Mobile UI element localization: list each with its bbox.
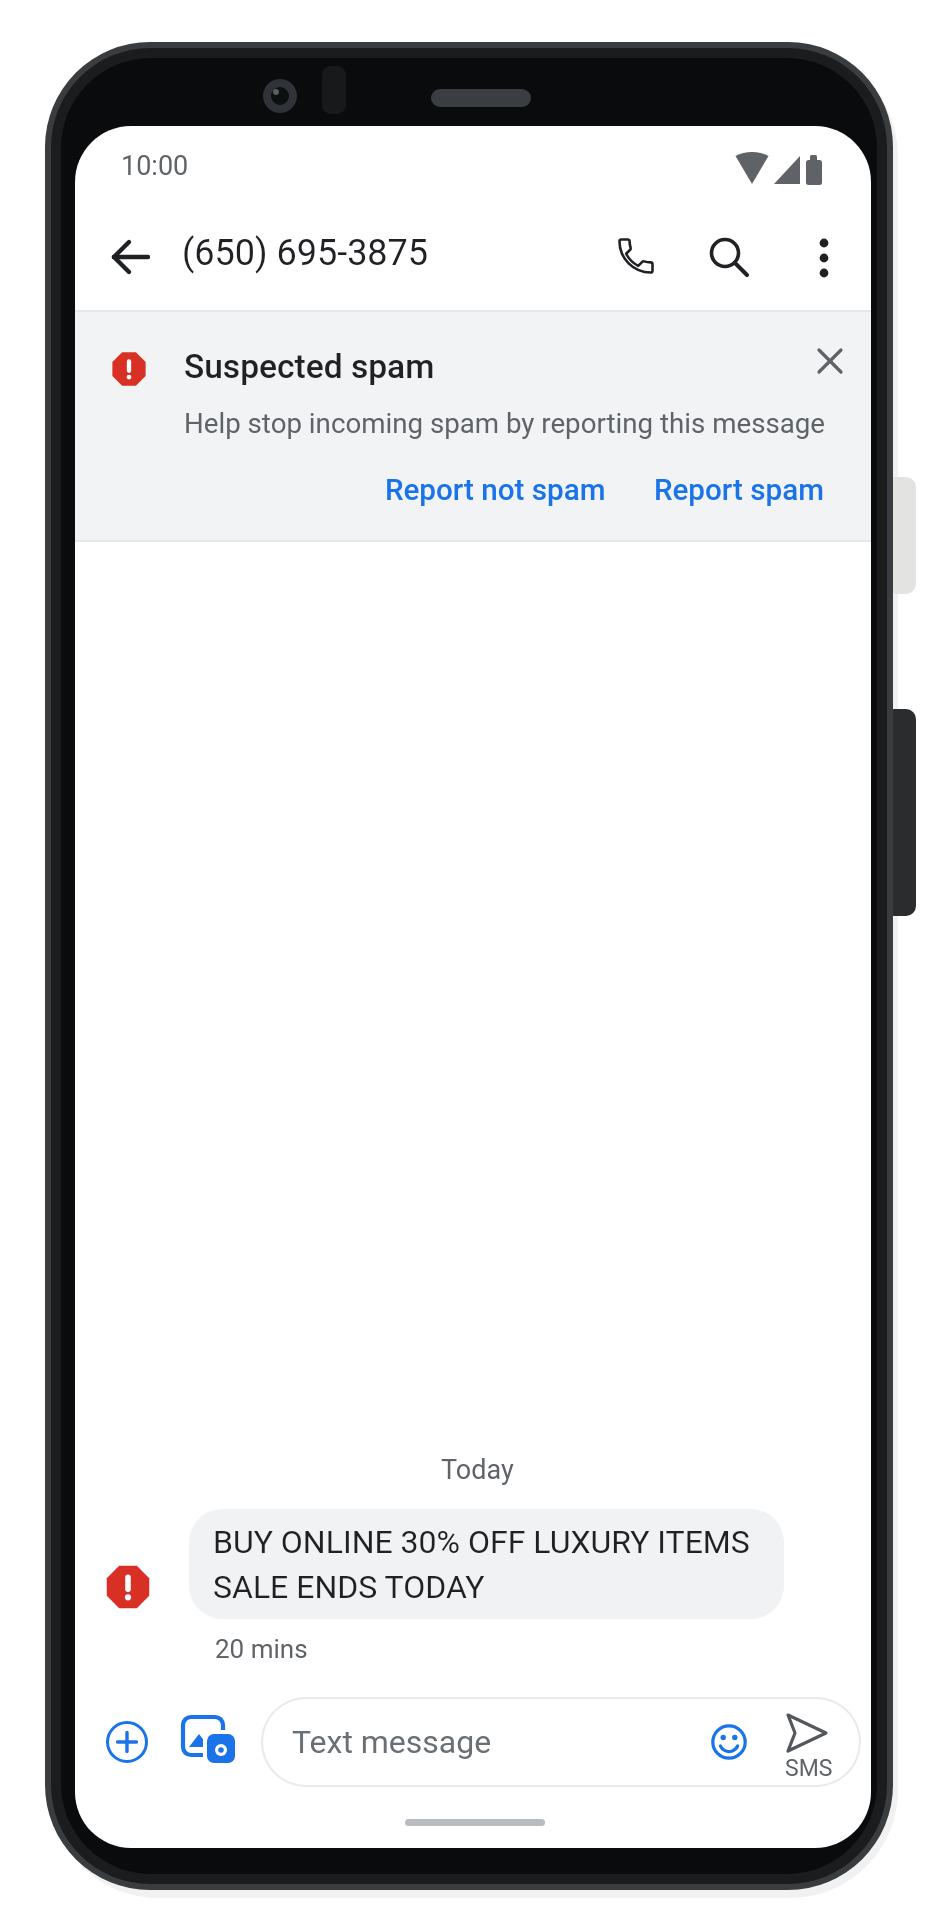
button[interactable] xyxy=(189,1509,784,1619)
button[interactable] xyxy=(710,1723,748,1761)
button[interactable]: Report spam xyxy=(654,473,824,508)
staticText: Report spam xyxy=(654,473,824,508)
button[interactable] xyxy=(810,341,850,381)
button[interactable]: SMS xyxy=(778,1706,840,1782)
button[interactable] xyxy=(614,234,658,278)
button[interactable]: Report not spam xyxy=(385,473,606,508)
staticText: SMS xyxy=(785,1755,833,1782)
button[interactable] xyxy=(180,1714,238,1770)
button[interactable] xyxy=(805,234,843,282)
staticText: BUY ONLINE 30% OFF LUXURY ITEMS xyxy=(213,1523,750,1561)
staticText: 10:00 xyxy=(121,150,189,182)
staticText: Text message xyxy=(292,1723,492,1761)
staticText: 20 mins xyxy=(215,1634,308,1664)
button[interactable] xyxy=(705,234,753,282)
staticText: SALE ENDS TODAY xyxy=(213,1568,485,1606)
staticText: Help stop incoming spam by reporting thi… xyxy=(184,407,826,439)
staticText: (650) 695-3875 xyxy=(182,232,429,274)
staticText: Suspected spam xyxy=(184,347,435,386)
staticText: Today xyxy=(441,1454,514,1486)
staticText: Report not spam xyxy=(385,473,606,508)
button[interactable] xyxy=(261,1697,861,1787)
button[interactable] xyxy=(110,236,152,278)
button[interactable] xyxy=(105,1720,149,1764)
